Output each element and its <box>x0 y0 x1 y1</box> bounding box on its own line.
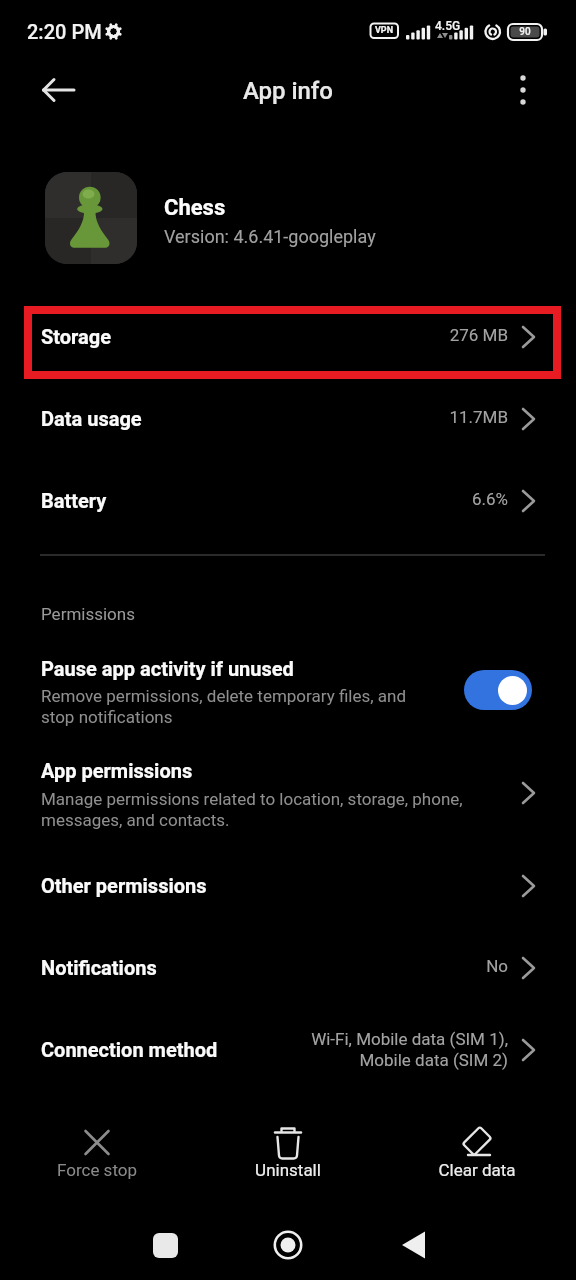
button[interactable] <box>0 848 576 924</box>
staticText: Force stop <box>37 1160 157 1180</box>
staticText: 6.6% <box>471 489 508 509</box>
staticText: Wi-Fi, Mobile data (SIM 1), Mobile data … <box>311 1029 508 1070</box>
staticText: App permissions <box>41 759 193 782</box>
staticText: Other permissions <box>41 874 207 897</box>
staticText: Connection method <box>41 1038 218 1061</box>
button[interactable]: Uninstall <box>228 1115 348 1187</box>
button[interactable] <box>0 930 576 1006</box>
staticText: Clear data <box>417 1160 537 1180</box>
staticText: Version: 4.6.41-googleplay <box>164 226 376 247</box>
staticText: Storage <box>41 325 112 348</box>
staticText: VPN <box>370 25 398 36</box>
button[interactable] <box>389 1220 439 1270</box>
staticText: 2:20 PM <box>27 20 102 43</box>
staticText: Battery <box>41 489 107 512</box>
button[interactable]: Clear data <box>417 1115 537 1187</box>
button[interactable] <box>30 62 86 118</box>
staticText: Manage permissions related to location, … <box>41 789 463 830</box>
staticText: App info <box>0 77 576 105</box>
staticText: Permissions <box>41 604 135 624</box>
staticText: 90 <box>508 26 542 38</box>
button[interactable] <box>464 670 532 710</box>
button[interactable] <box>0 645 576 745</box>
staticText: 11.7MB <box>449 407 508 427</box>
staticText: Pause app activity if unused <box>41 657 294 680</box>
button[interactable] <box>263 1220 313 1270</box>
staticText: Chess <box>164 195 226 221</box>
button[interactable] <box>140 1220 190 1270</box>
staticText: No <box>486 956 508 976</box>
button[interactable] <box>0 380 576 458</box>
staticText: Remove permissions, delete temporary fil… <box>41 686 407 727</box>
staticText: 4.5G <box>435 19 461 33</box>
staticText: 276 MB <box>449 325 508 345</box>
button[interactable] <box>0 1012 576 1090</box>
staticText: Data usage <box>41 407 142 430</box>
button[interactable] <box>0 298 576 376</box>
button[interactable] <box>0 745 576 843</box>
staticText: Notifications <box>41 956 157 979</box>
button[interactable] <box>0 462 576 540</box>
staticText: Uninstall <box>228 1160 348 1180</box>
button[interactable] <box>499 66 547 114</box>
button[interactable]: Force stop <box>37 1115 157 1187</box>
